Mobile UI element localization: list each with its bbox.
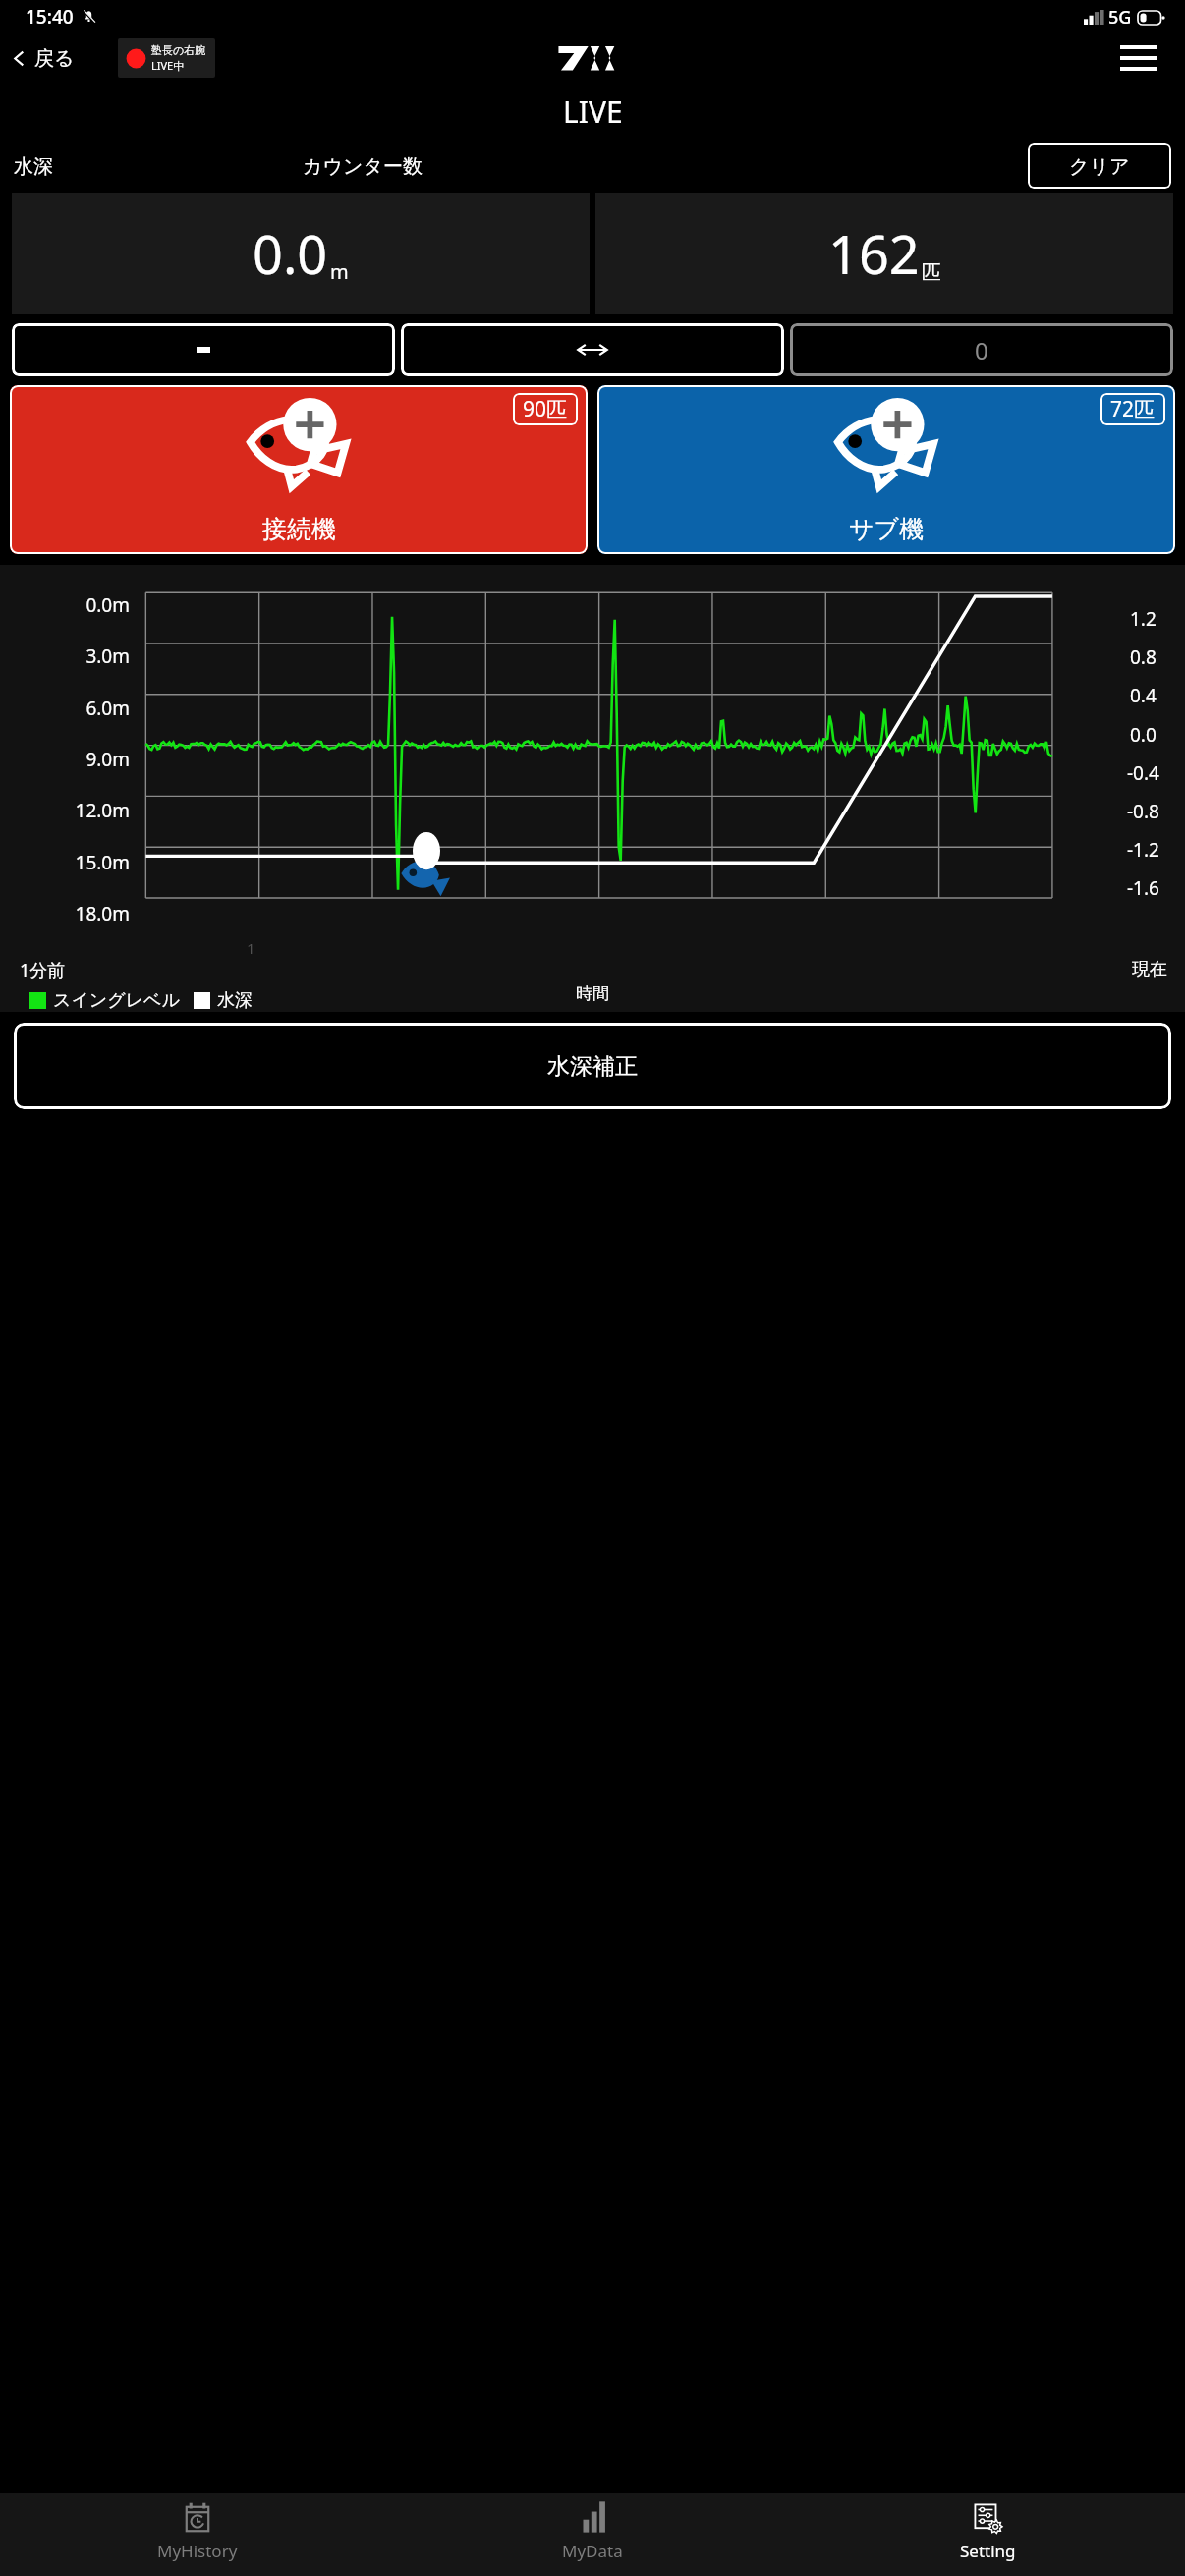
staticText: 3.0m xyxy=(85,644,130,669)
staticText: 15.0m xyxy=(75,850,130,875)
staticText: LIVE xyxy=(563,91,623,132)
staticText: 12.0m xyxy=(75,798,130,823)
staticText: 0.0 xyxy=(253,217,328,290)
button[interactable] xyxy=(401,323,784,376)
button[interactable]: クリア xyxy=(1028,143,1171,189)
button[interactable]: 塾長の右腕 xyxy=(118,38,215,78)
staticText: -0.8 xyxy=(1127,799,1159,824)
staticText: 1 xyxy=(247,938,255,958)
staticText: 1.2 xyxy=(1130,606,1157,632)
staticText: MyHistory xyxy=(157,2540,238,2562)
staticText: 接続機 xyxy=(262,514,336,544)
staticText: 5G xyxy=(1108,5,1132,29)
staticText: -1.2 xyxy=(1127,837,1159,863)
staticText: Setting xyxy=(960,2540,1016,2562)
button[interactable]: Setting xyxy=(790,2493,1185,2576)
staticText: 9.0m xyxy=(85,747,130,772)
staticText: 0.4 xyxy=(1130,683,1157,708)
button[interactable]: 90匹 xyxy=(10,385,588,554)
staticText: 162 xyxy=(828,217,920,290)
staticText: 水深補正 xyxy=(547,1052,638,1081)
staticText: スイングレベル xyxy=(53,989,180,1012)
button[interactable]: 0.0 xyxy=(12,193,590,314)
staticText: MyData xyxy=(562,2540,623,2562)
staticText: 水深 xyxy=(14,154,53,179)
staticText: 0.0m xyxy=(85,592,130,618)
staticText: 72匹 xyxy=(1110,395,1156,423)
staticText: 0.8 xyxy=(1130,644,1157,670)
staticText: クリア xyxy=(1069,154,1130,179)
button[interactable]: MyHistory xyxy=(0,2493,395,2576)
staticText: サブ機 xyxy=(849,514,925,544)
staticText: 塾長の右腕 xyxy=(151,43,206,57)
staticText: -1.6 xyxy=(1127,875,1159,901)
button[interactable] xyxy=(12,323,395,376)
staticText: 時間 xyxy=(576,983,609,1004)
staticText: カウンター数 xyxy=(303,154,423,179)
staticText: 6.0m xyxy=(85,696,130,721)
button[interactable]: 戻る xyxy=(4,42,81,75)
staticText: -0.4 xyxy=(1127,760,1159,786)
button[interactable]: Menu xyxy=(1114,39,1163,77)
staticText: 現在 xyxy=(1132,958,1167,980)
staticText: LIVE中 xyxy=(151,58,185,73)
staticText: 0.0 xyxy=(1130,722,1157,748)
button[interactable]: MyData xyxy=(395,2493,790,2576)
staticText: 15:40 xyxy=(26,4,74,29)
staticText: 18.0m xyxy=(75,901,130,926)
staticText: 1分前 xyxy=(20,958,66,982)
button[interactable]: 水深補正 xyxy=(14,1023,1171,1109)
button[interactable]: 0 xyxy=(790,323,1173,376)
staticText: 水深 xyxy=(217,989,253,1012)
staticText: 90匹 xyxy=(523,395,568,423)
staticText: 匹 xyxy=(922,260,941,285)
button[interactable]: 162 xyxy=(595,193,1173,314)
staticText: m xyxy=(330,258,349,285)
staticText: 0 xyxy=(975,334,988,366)
staticText: 戻る xyxy=(34,46,75,71)
button[interactable]: 72匹 xyxy=(597,385,1175,554)
